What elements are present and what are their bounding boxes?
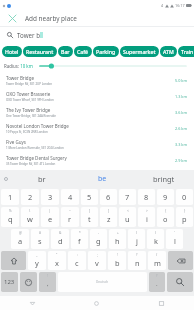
button[interactable]: ? xyxy=(128,251,146,270)
button[interactable]: @ xyxy=(11,229,29,249)
button[interactable]: + xyxy=(109,229,126,249)
button[interactable]: < xyxy=(119,207,136,227)
staticText: { xyxy=(165,209,167,213)
staticText: " xyxy=(56,253,58,257)
button[interactable]: & xyxy=(51,229,69,249)
staticText: * xyxy=(79,231,81,235)
staticText: OXO Tower Wharf, SE1 9PH London xyxy=(6,98,54,102)
button[interactable]: \ xyxy=(21,207,39,227)
button[interactable]: ? xyxy=(149,272,165,292)
staticText: w xyxy=(27,214,33,224)
staticText: u xyxy=(125,214,130,224)
button[interactable]: 8 xyxy=(138,189,155,205)
staticText: ? xyxy=(136,253,138,257)
button[interactable]: - xyxy=(90,229,107,249)
staticText: - xyxy=(98,231,100,235)
button[interactable]: Train Station xyxy=(178,46,194,57)
button[interactable]: Hotel xyxy=(2,46,22,57)
button[interactable]: Café xyxy=(74,46,92,57)
button[interactable]: Recents xyxy=(129,296,194,310)
staticText: e xyxy=(48,214,53,224)
button[interactable]: OXO Tower Brasserie xyxy=(0,88,194,104)
staticText: # xyxy=(39,231,42,235)
button[interactable]: Backspace xyxy=(168,251,193,270)
button[interactable]: _ xyxy=(28,251,46,270)
button[interactable]: 6 xyxy=(100,189,117,205)
staticText: } xyxy=(184,209,186,213)
button[interactable]: ATM xyxy=(160,46,177,57)
button[interactable]: Parking xyxy=(93,46,119,57)
staticText: 123 xyxy=(4,278,15,286)
button[interactable]: Back xyxy=(0,296,64,310)
button[interactable]: bringt xyxy=(133,170,194,188)
staticText: ' xyxy=(174,231,175,235)
staticText: , xyxy=(47,280,49,288)
button[interactable]: ; xyxy=(88,251,106,270)
button[interactable]: be xyxy=(72,170,133,188)
button[interactable]: " xyxy=(48,251,66,270)
button[interactable]: 7 xyxy=(119,189,136,205)
button[interactable]: Emoji xyxy=(20,272,37,292)
staticText: Café xyxy=(77,48,89,55)
button[interactable]: 5 xyxy=(81,189,98,205)
button[interactable]: The Ivy Tower Bridge xyxy=(0,104,194,120)
button[interactable]: 123 xyxy=(1,272,18,292)
button[interactable]: [ xyxy=(81,207,98,227)
staticText: Train Station xyxy=(181,48,194,55)
staticText: & xyxy=(59,231,62,235)
button[interactable]: | xyxy=(41,207,59,227)
button[interactable]: % xyxy=(1,207,19,227)
button[interactable]: Tower Bridge Dental Surgery xyxy=(0,152,194,168)
staticText: 2.9 km xyxy=(175,158,187,163)
staticText: c xyxy=(75,258,79,268)
staticText: ] xyxy=(108,209,110,213)
button[interactable]: ) xyxy=(147,229,164,249)
button[interactable]: > xyxy=(138,207,155,227)
button[interactable]: 0 xyxy=(176,189,193,205)
button[interactable]: 2 xyxy=(21,189,39,205)
button[interactable]: Search xyxy=(167,272,193,292)
staticText: Radius: 10 km xyxy=(4,63,33,69)
staticText: g xyxy=(96,236,101,246)
staticText: > xyxy=(146,209,148,213)
staticText: j xyxy=(136,236,138,246)
staticText: Novotel London Tower Bridge xyxy=(6,123,69,129)
staticText: OXO Tower Brasserie xyxy=(6,91,51,97)
staticText: . xyxy=(156,280,158,288)
button[interactable]: Deutsch xyxy=(58,272,147,292)
button[interactable]: Shift xyxy=(1,251,26,270)
button[interactable]: 4 xyxy=(61,189,79,205)
button[interactable]: Tower b xyxy=(0,27,194,42)
staticText: t xyxy=(88,214,91,224)
button[interactable]: Bar xyxy=(58,46,73,57)
button[interactable]: ! xyxy=(108,251,126,270)
button[interactable]: # xyxy=(31,229,49,249)
button[interactable]: Restaurant xyxy=(23,46,57,57)
button[interactable]: Supermarket xyxy=(120,46,159,57)
button[interactable]: Five Guys xyxy=(0,136,194,152)
button[interactable]: br xyxy=(11,170,72,188)
staticText: The Ivy Tower Bridge xyxy=(6,107,51,113)
button[interactable]: ! xyxy=(39,272,56,292)
button[interactable]: } xyxy=(176,207,193,227)
button[interactable]: ~ xyxy=(61,207,79,227)
button[interactable]: / xyxy=(148,251,166,270)
button[interactable]: { xyxy=(157,207,174,227)
button[interactable]: 1 xyxy=(1,189,19,205)
button[interactable]: Tower Bridge xyxy=(0,72,194,88)
button[interactable]: 3 xyxy=(41,189,59,205)
button[interactable]: ( xyxy=(128,229,145,249)
button[interactable]: Home xyxy=(64,296,129,310)
staticText: 0 xyxy=(182,192,187,202)
staticText: Five Guys xyxy=(6,139,26,145)
button[interactable]: * xyxy=(71,229,88,249)
button[interactable]: Close xyxy=(0,11,24,26)
button[interactable]: Novotel London Tower Bridge xyxy=(0,120,194,136)
staticText: Deutsch xyxy=(96,280,109,284)
button[interactable]: 9 xyxy=(157,189,174,205)
staticText: f xyxy=(78,236,81,246)
button[interactable]: ] xyxy=(100,207,117,227)
staticText: Tower Bridge Dental Surgery xyxy=(6,155,67,161)
button[interactable]: ' xyxy=(166,229,183,249)
button[interactable]: : xyxy=(68,251,86,270)
